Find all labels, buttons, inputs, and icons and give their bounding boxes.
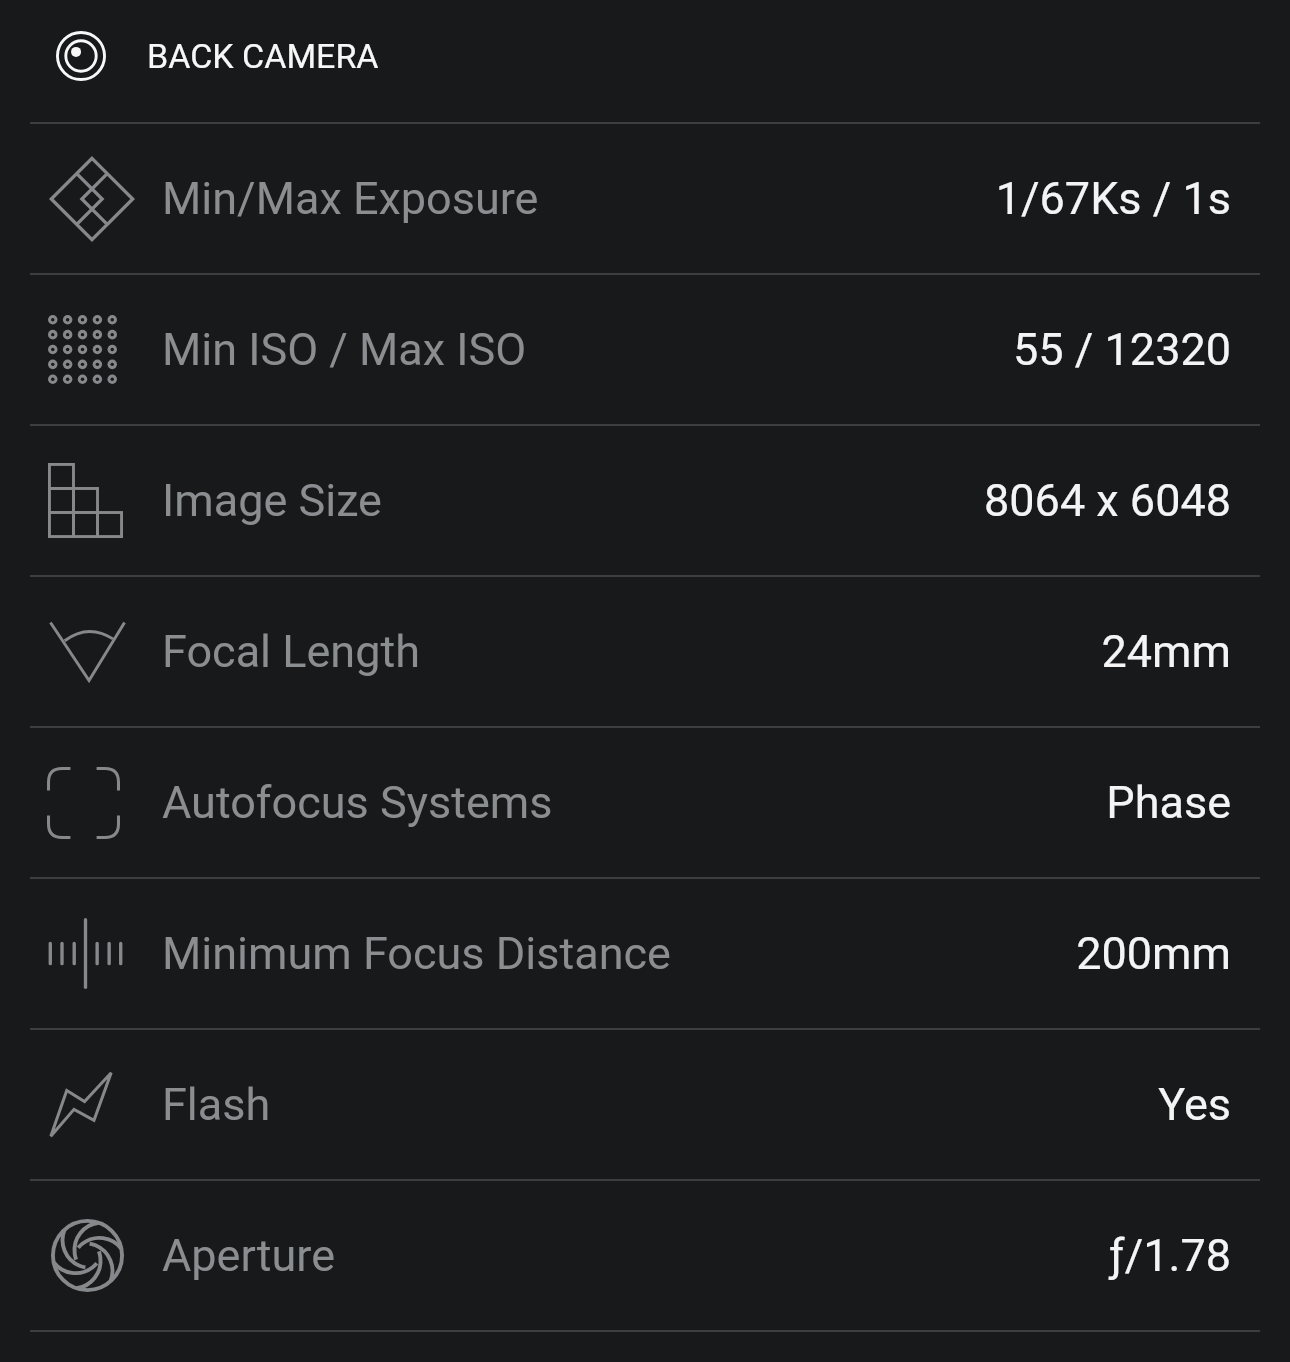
- button[interactable]: ISO: [0, 275, 1290, 426]
- other: ISO: [48, 315, 117, 384]
- button[interactable]: Flash: [0, 1030, 1290, 1181]
- staticText: Min/Max Exposure: [162, 172, 539, 225]
- other: Back camera: [56, 31, 106, 81]
- button[interactable]: Autofocus: [0, 728, 1290, 879]
- other: Flash: [49, 1071, 113, 1138]
- staticText: Autofocus Systems: [162, 776, 553, 829]
- staticText: Yes: [1158, 1078, 1231, 1131]
- other: Focal length: [49, 621, 126, 682]
- staticText: 1/67Ks / 1s: [995, 172, 1231, 225]
- staticText: 8064 x 6048: [984, 474, 1231, 527]
- staticText: Minimum Focus Distance: [162, 927, 671, 980]
- staticText: Focal Length: [162, 625, 420, 678]
- staticText: Image Size: [162, 474, 382, 527]
- staticText: BACK CAMERA: [147, 36, 379, 76]
- button[interactable]: Exposure: [0, 124, 1290, 275]
- button[interactable]: Back camera: [0, 0, 1290, 122]
- button[interactable]: Aperture: [0, 1181, 1290, 1332]
- staticText: Phase: [1106, 776, 1231, 829]
- other: Autofocus: [47, 767, 120, 839]
- staticText: 55 / 12320: [1013, 323, 1231, 376]
- button[interactable]: Focus distance: [0, 879, 1290, 1030]
- button[interactable]: Focal length: [0, 577, 1290, 728]
- other: Image size: [48, 463, 123, 538]
- other: Exposure: [49, 156, 135, 242]
- staticText: 24mm: [1101, 625, 1231, 678]
- other: Focus distance: [47, 918, 124, 989]
- staticText: ƒ/1.78: [1109, 1229, 1231, 1282]
- staticText: Min ISO / Max ISO: [162, 323, 527, 376]
- button[interactable]: Image size: [0, 426, 1290, 577]
- staticText: Aperture: [162, 1229, 336, 1282]
- other: Aperture: [51, 1219, 124, 1292]
- staticText: Flash: [162, 1078, 271, 1131]
- staticText: 200mm: [1076, 927, 1231, 980]
